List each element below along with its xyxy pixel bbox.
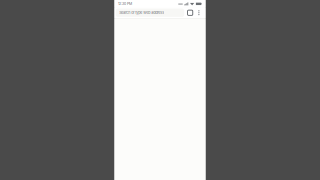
button[interactable]: Tabs [185, 7, 195, 18]
staticText: Search or type web address [119, 10, 164, 15]
button[interactable]: More options [195, 7, 203, 18]
button[interactable]: Search or type web address [116, 9, 184, 17]
staticText: 12:30 PM [118, 2, 132, 6]
